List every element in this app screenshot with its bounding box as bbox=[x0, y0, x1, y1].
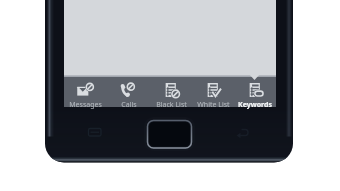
staticText: Messages bbox=[69, 100, 102, 110]
button[interactable]: Home bbox=[145, 118, 194, 150]
button[interactable]: Keywords bbox=[234, 77, 276, 107]
button[interactable]: Black List bbox=[150, 77, 192, 107]
staticText: Black List bbox=[156, 100, 187, 110]
staticText: Keywords bbox=[238, 100, 272, 110]
staticText: White List bbox=[197, 100, 230, 110]
button[interactable]: Menu bbox=[86, 125, 104, 139]
button[interactable]: Calls bbox=[107, 77, 150, 107]
button[interactable]: White List bbox=[192, 77, 234, 107]
staticText: Calls bbox=[121, 100, 137, 110]
button[interactable]: Back bbox=[234, 126, 254, 140]
button[interactable]: Messages bbox=[64, 77, 107, 107]
